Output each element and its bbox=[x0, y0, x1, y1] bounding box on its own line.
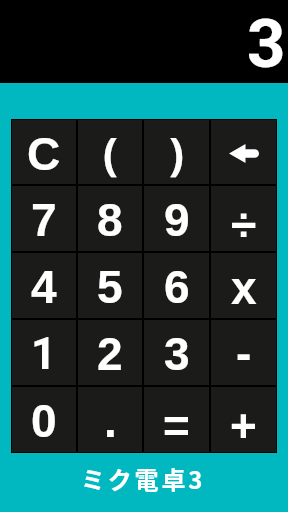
button[interactable]: 2 bbox=[78, 320, 142, 385]
staticText: ÷ bbox=[231, 199, 257, 250]
staticText: 7 bbox=[31, 194, 57, 245]
staticText: ) bbox=[169, 123, 184, 183]
staticText: 6 bbox=[164, 261, 190, 312]
button[interactable]: ( bbox=[78, 120, 142, 184]
button[interactable]: ÷ bbox=[211, 186, 276, 251]
staticText: 1 bbox=[31, 328, 57, 380]
button[interactable]: = bbox=[144, 387, 209, 452]
button[interactable]: x bbox=[211, 253, 276, 318]
button[interactable]: . bbox=[78, 387, 142, 452]
button[interactable]: 8 bbox=[78, 186, 142, 251]
button[interactable]: 1 bbox=[12, 320, 76, 385]
staticText: - bbox=[236, 327, 252, 378]
button[interactable]: 4 bbox=[12, 253, 76, 318]
staticText: = bbox=[163, 400, 190, 451]
button[interactable]: 3 bbox=[144, 320, 209, 385]
staticText: 8 bbox=[97, 194, 123, 245]
button[interactable]: 6 bbox=[144, 253, 209, 318]
staticText: 2 bbox=[97, 328, 123, 379]
staticText: . bbox=[104, 395, 117, 446]
button[interactable]: 5 bbox=[78, 253, 142, 318]
button[interactable]: C bbox=[12, 120, 76, 184]
button[interactable]: 0 bbox=[12, 387, 76, 452]
staticText: 3 bbox=[164, 328, 190, 379]
staticText: 3 bbox=[247, 5, 286, 84]
button[interactable]: 3 bbox=[0, 0, 288, 83]
staticText: 0 bbox=[31, 395, 57, 446]
staticText: C bbox=[27, 128, 61, 179]
button[interactable]: 9 bbox=[144, 186, 209, 251]
staticText: x bbox=[231, 262, 257, 313]
staticText: 9 bbox=[164, 194, 190, 245]
other: Backspace bbox=[229, 144, 259, 163]
button[interactable]: + bbox=[211, 387, 276, 452]
button[interactable]: Backspace bbox=[211, 120, 276, 184]
staticText: 4 bbox=[31, 261, 57, 312]
staticText: ミク電卓3 bbox=[81, 461, 206, 496]
staticText: + bbox=[230, 400, 257, 451]
staticText: 5 bbox=[97, 261, 123, 312]
staticText: ( bbox=[103, 123, 118, 183]
button[interactable]: 7 bbox=[12, 186, 76, 251]
button[interactable]: - bbox=[211, 320, 276, 385]
button[interactable]: ) bbox=[144, 120, 209, 184]
